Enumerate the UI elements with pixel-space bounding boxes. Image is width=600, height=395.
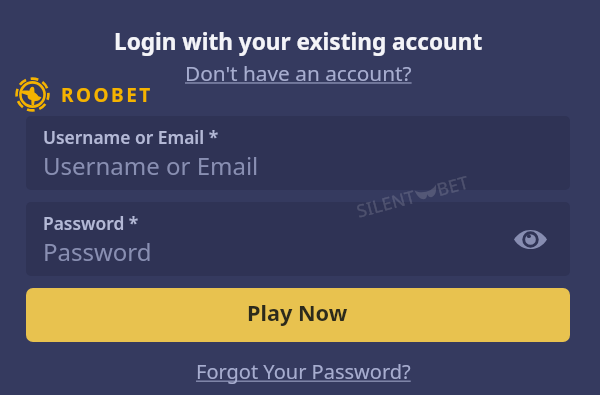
staticText: Username or Email (43, 149, 259, 182)
staticText: SILENT (354, 184, 418, 223)
staticText: BET (434, 169, 472, 201)
staticText: Login with your existing account (114, 26, 483, 57)
button[interactable]: Password * (26, 202, 570, 276)
staticText: Don't have an account? (185, 59, 412, 87)
staticText: Password (43, 235, 152, 268)
staticText: Forgot Your Password? (196, 358, 411, 385)
button[interactable]: Play Now (26, 288, 570, 342)
staticText: Play Now (247, 298, 348, 328)
staticText: ROOBET (61, 82, 153, 108)
button[interactable]: Don't have an account? (185, 59, 412, 87)
staticText: Password * (43, 211, 139, 235)
staticText: Username or Email * (43, 125, 219, 149)
button[interactable]: Show password (509, 218, 551, 260)
button[interactable]: Forgot Your Password? (196, 358, 411, 385)
button[interactable]: Username or Email * (26, 116, 570, 190)
